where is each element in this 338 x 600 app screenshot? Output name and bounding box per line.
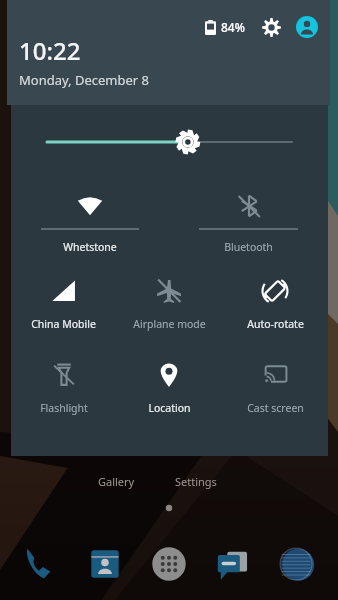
button[interactable]: User profile: [294, 14, 320, 40]
button[interactable]: Cast screen: [222, 347, 328, 431]
staticText: Airplane mode: [133, 317, 206, 331]
staticText: Settings: [175, 474, 217, 489]
button[interactable]: Browser: [274, 542, 318, 586]
button[interactable]: Airplane mode: [116, 263, 222, 347]
button[interactable]: Flashlight: [11, 347, 116, 431]
staticText: Gallery: [98, 474, 135, 489]
button[interactable]: Phone: [20, 542, 64, 586]
staticText: Flashlight: [40, 401, 88, 415]
button[interactable]: China Mobile: [11, 263, 116, 347]
button[interactable]: Apps: [147, 542, 191, 586]
staticText: Location: [148, 401, 191, 415]
button[interactable]: Location: [116, 347, 222, 431]
staticText: Bluetooth: [224, 240, 273, 254]
staticText: Monday, December 8: [19, 71, 150, 89]
staticText: 84%: [221, 19, 245, 35]
button[interactable]: Brightness: [11, 105, 328, 179]
staticText: Cast screen: [247, 401, 304, 415]
button[interactable]: Bluetooth: [169, 179, 328, 263]
button[interactable]: Whetstone: [11, 179, 169, 263]
button[interactable]: Messaging: [211, 542, 255, 586]
staticText: Auto-rotate: [247, 317, 304, 331]
staticText: Whetstone: [63, 240, 117, 254]
button[interactable]: Contacts: [83, 542, 127, 586]
button[interactable]: Settings: [258, 14, 284, 40]
button[interactable]: Auto-rotate: [222, 263, 328, 347]
staticText: China Mobile: [31, 317, 96, 331]
staticText: 10:22: [19, 34, 81, 67]
